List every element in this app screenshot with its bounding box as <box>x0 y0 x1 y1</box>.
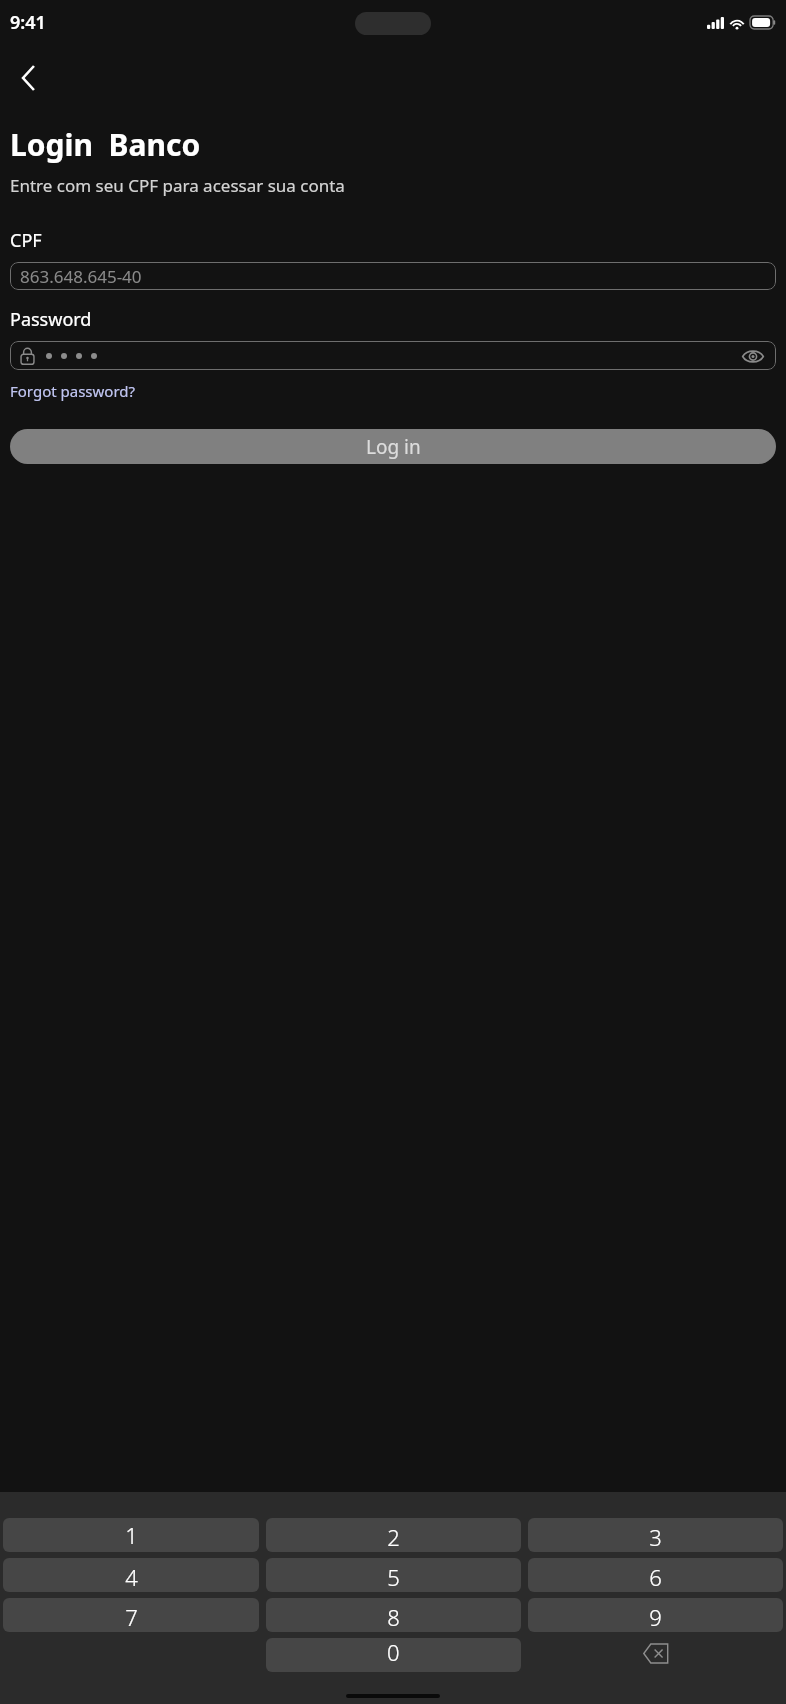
button[interactable]: 6 <box>528 1558 783 1592</box>
staticText: 5 <box>387 1562 400 1592</box>
staticText: 6 <box>649 1562 662 1592</box>
button[interactable]: Backspace <box>528 1638 783 1672</box>
button[interactable]: Back <box>4 54 52 102</box>
staticText: Log in <box>366 434 421 460</box>
staticText: 9 <box>649 1602 662 1632</box>
staticText: 8 <box>387 1602 400 1632</box>
staticText: 9:41 <box>10 10 46 35</box>
staticText: Login Banco <box>10 124 201 165</box>
staticText: 3 <box>649 1522 662 1552</box>
staticText: 1 <box>125 1520 138 1550</box>
button[interactable]: Log in <box>10 429 776 464</box>
button[interactable]: 9 <box>528 1598 783 1632</box>
button[interactable]: 8 <box>266 1598 521 1632</box>
button[interactable]: 0 <box>266 1638 521 1672</box>
button[interactable]: Show password <box>10 341 776 370</box>
button[interactable]: 1 <box>3 1518 259 1552</box>
button[interactable]: Show password <box>740 343 766 369</box>
button[interactable]: 863.648.645-40 <box>10 262 776 290</box>
staticText: 7 <box>125 1602 138 1632</box>
staticText: Forgot password? <box>10 381 136 401</box>
staticText: 0 <box>387 1638 400 1667</box>
staticText: 4 <box>125 1562 138 1592</box>
button[interactable]: 7 <box>3 1598 259 1632</box>
button[interactable]: 2 <box>266 1518 521 1552</box>
button[interactable]: Forgot password? <box>10 379 136 403</box>
staticText: CPF <box>10 228 42 253</box>
button[interactable]: 3 <box>528 1518 783 1552</box>
staticText: 2 <box>387 1522 400 1552</box>
staticText: Entre com seu CPF para acessar sua conta <box>10 174 345 197</box>
staticText: 863.648.645-40 <box>20 265 142 288</box>
button[interactable]: 4 <box>3 1558 259 1592</box>
staticText: Password <box>10 307 92 332</box>
button[interactable]: 5 <box>266 1558 521 1592</box>
